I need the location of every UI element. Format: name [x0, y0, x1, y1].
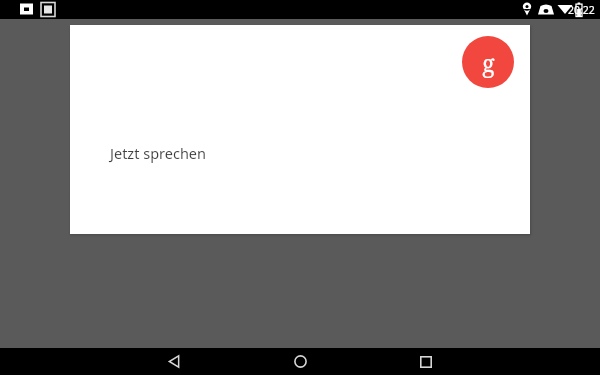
staticText: g	[482, 47, 495, 78]
button[interactable]: Zurück	[142, 348, 206, 375]
staticText: Jetzt sprechen	[110, 143, 206, 163]
button[interactable]: Startbildschirm	[268, 348, 332, 375]
staticText: 20:22	[568, 3, 595, 17]
button[interactable]: Google Sprachsuche	[462, 36, 514, 88]
button[interactable]: Übersicht	[394, 348, 458, 375]
